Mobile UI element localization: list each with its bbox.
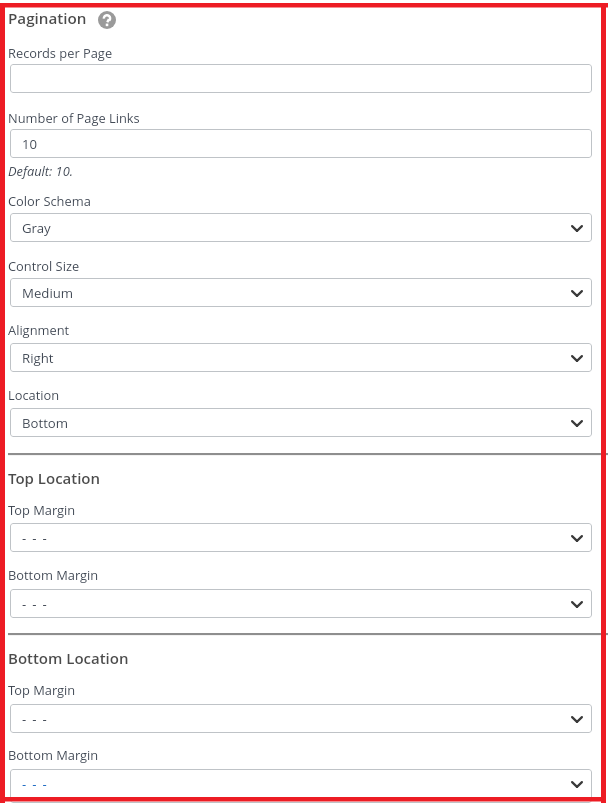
staticText: Records per Page — [8, 44, 113, 61]
staticText: Alignment — [8, 321, 70, 338]
staticText: Color Schema — [8, 192, 91, 209]
button[interactable]: - - - — [10, 769, 592, 803]
staticText: Default: 10. — [8, 162, 73, 179]
button[interactable] — [10, 64, 592, 93]
staticText: - - - — [22, 710, 49, 728]
staticText: 10 — [22, 135, 38, 153]
staticText: Bottom Margin — [8, 746, 99, 763]
staticText: Top Margin — [8, 681, 76, 698]
staticText: - - - — [22, 595, 49, 613]
staticText: - - - — [22, 775, 49, 793]
staticText: Medium — [22, 284, 74, 302]
staticText: Number of Page Links — [8, 109, 140, 126]
staticText: Top Margin — [8, 501, 76, 518]
button[interactable]: - - - — [10, 523, 592, 552]
staticText: Bottom Location — [8, 648, 129, 668]
button[interactable]: Gray — [10, 213, 592, 242]
button[interactable]: - - - — [10, 704, 592, 733]
staticText: Bottom Margin — [8, 566, 99, 583]
button[interactable]: Bottom — [10, 408, 592, 437]
staticText: Gray — [22, 219, 51, 237]
button[interactable]: Medium — [10, 278, 592, 307]
staticText: Location — [8, 386, 60, 403]
button[interactable]: - - - — [10, 589, 592, 618]
staticText: - - - — [22, 529, 49, 547]
staticText: Top Location — [8, 468, 101, 488]
staticText: Pagination — [8, 8, 87, 29]
button[interactable]: 10 — [10, 129, 592, 158]
staticText: Right — [22, 349, 54, 367]
staticText: Control Size — [8, 257, 80, 274]
button[interactable]: Help — [98, 11, 116, 29]
button[interactable]: Right — [10, 343, 592, 372]
staticText: Bottom — [22, 414, 69, 432]
